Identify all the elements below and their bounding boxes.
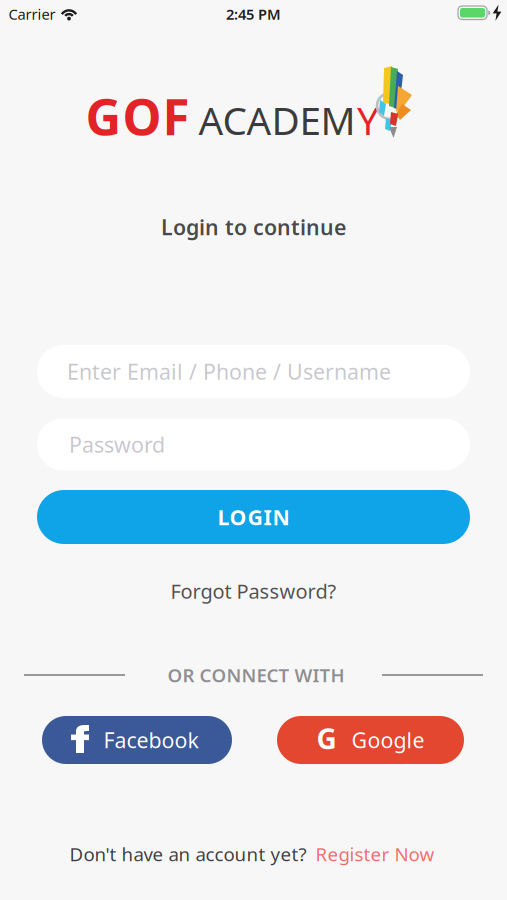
- button[interactable]: Password: [37, 418, 470, 470]
- staticText: Don't have an account yet?: [69, 842, 306, 866]
- staticText: Password: [69, 430, 165, 459]
- button[interactable]: Forgot Password?: [170, 578, 336, 604]
- staticText: Google: [351, 726, 424, 754]
- staticText: Facebook: [103, 726, 198, 754]
- staticText: Login to continue: [161, 213, 346, 241]
- staticText: OR CONNECT WITH: [167, 663, 344, 687]
- button[interactable]: G: [277, 716, 464, 764]
- button[interactable]: Enter Email / Phone / Username: [37, 345, 470, 398]
- staticText: LOGIN: [217, 503, 289, 531]
- staticText: GOF: [85, 83, 189, 149]
- staticText: Y: [357, 94, 379, 146]
- staticText: Register Now: [315, 842, 434, 866]
- staticText: ACADEM: [198, 94, 355, 146]
- button[interactable]: LOGIN: [37, 490, 470, 544]
- staticText: Forgot Password?: [170, 578, 336, 604]
- staticText: 2:45 PM: [226, 4, 281, 24]
- button[interactable]: Register Now: [315, 842, 434, 866]
- staticText: Enter Email / Phone / Username: [67, 357, 391, 386]
- staticText: G: [316, 720, 336, 757]
- staticText: Carrier: [8, 4, 55, 24]
- button[interactable]: Facebook: [42, 716, 232, 764]
